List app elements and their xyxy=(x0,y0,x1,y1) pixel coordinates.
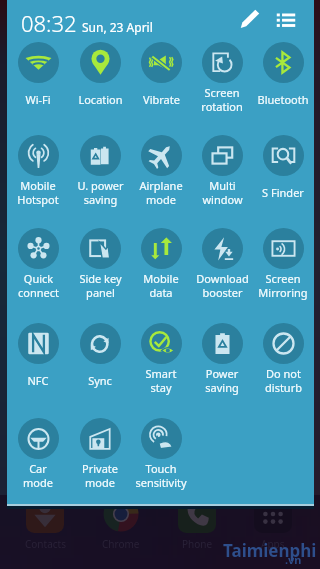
staticText: Smart stay xyxy=(145,366,177,395)
staticText: Taimienphi xyxy=(223,539,317,562)
button[interactable]: Bluetooth xyxy=(251,40,315,114)
staticText: Car mode xyxy=(23,461,53,490)
button[interactable]: Sync xyxy=(68,321,132,395)
button[interactable]: Screen rotation xyxy=(190,40,254,114)
staticText: Chrome xyxy=(102,537,140,551)
button[interactable]: Car mode xyxy=(6,416,70,490)
staticText: S Finder xyxy=(262,185,304,200)
staticText: Download booster xyxy=(196,271,249,300)
button[interactable]: Do not disturb xyxy=(251,321,315,395)
staticText: Phone xyxy=(182,537,213,551)
button[interactable]: Screen Mirroring xyxy=(251,226,315,300)
button[interactable]: Mobile Hotspot xyxy=(6,133,70,207)
staticText: Power saving xyxy=(205,366,239,395)
staticText: Do not disturb xyxy=(265,366,302,395)
button[interactable]: Phone xyxy=(167,495,227,551)
button[interactable]: Contacts xyxy=(15,495,75,551)
staticText: Contacts xyxy=(25,537,66,551)
button[interactable]: Mobile data xyxy=(129,226,193,300)
staticText: Sun, 23 April xyxy=(82,19,153,35)
staticText: Vibrate xyxy=(143,92,180,107)
staticText: Mobile Hotspot xyxy=(17,178,59,207)
button[interactable]: Smart stay xyxy=(129,321,193,395)
staticText: Quick connect xyxy=(18,271,59,300)
staticText: Apps xyxy=(261,537,285,551)
staticText: Wi-Fi xyxy=(25,92,51,107)
button[interactable]: Power saving xyxy=(190,321,254,395)
button[interactable]: NFC xyxy=(6,321,70,395)
staticText: Screen rotation xyxy=(201,85,243,114)
button[interactable]: Multi window xyxy=(190,133,254,207)
button[interactable]: Location xyxy=(68,40,132,114)
button[interactable]: Apps xyxy=(243,495,303,551)
button[interactable]: Chrome xyxy=(91,495,151,551)
staticText: Screen Mirroring xyxy=(258,271,308,300)
staticText: Bluetooth xyxy=(257,92,309,107)
staticText: NFC xyxy=(27,373,49,388)
staticText: 08:32 xyxy=(21,8,77,38)
staticText: .vn xyxy=(285,552,302,567)
staticText: Side key panel xyxy=(79,271,122,300)
staticText: Airplane mode xyxy=(139,178,183,207)
button[interactable]: Side key panel xyxy=(68,226,132,300)
staticText: Mobile data xyxy=(143,271,179,300)
button[interactable]: Private mode xyxy=(68,416,132,490)
button[interactable]: Airplane mode xyxy=(129,133,193,207)
staticText: Touch sensitivity xyxy=(135,461,187,490)
button[interactable]: Download booster xyxy=(190,226,254,300)
staticText: Private mode xyxy=(82,461,118,490)
button[interactable]: Show all settings xyxy=(275,8,297,30)
button[interactable]: U. power saving xyxy=(68,133,132,207)
button[interactable]: Touch sensitivity xyxy=(129,416,193,490)
button[interactable]: S Finder xyxy=(251,133,315,207)
button[interactable]: Vibrate xyxy=(129,40,193,114)
button[interactable]: Quick connect xyxy=(6,226,70,300)
staticText: Multi window xyxy=(202,178,243,207)
button[interactable]: Wi-Fi xyxy=(6,40,70,114)
button[interactable]: Edit quick settings xyxy=(239,7,261,29)
staticText: Sync xyxy=(88,373,112,388)
staticText: U. power saving xyxy=(77,178,124,207)
staticText: Location xyxy=(78,92,123,107)
